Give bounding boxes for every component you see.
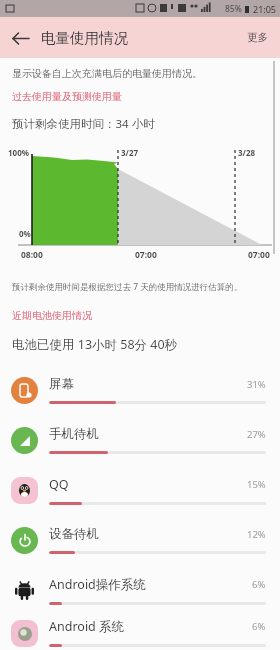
staticText: 预计剩余使用时间是根据您过去 7 天的使用情况进行估算的。 bbox=[12, 281, 243, 293]
button[interactable]: 屏幕 bbox=[0, 365, 280, 415]
button[interactable]: Android 系统 bbox=[0, 615, 280, 650]
staticText: 07:00 bbox=[248, 249, 270, 261]
staticText: 6% bbox=[252, 620, 266, 633]
staticText: 过去使用量及预测使用量 bbox=[12, 90, 122, 103]
staticText: 预计剩余使用时间：34 小时 bbox=[12, 116, 155, 132]
staticText: 08:00 bbox=[21, 249, 43, 261]
staticText: 100% bbox=[8, 147, 29, 158]
staticText: 设备待机 bbox=[49, 526, 247, 542]
button[interactable]: 手机待机 bbox=[0, 415, 280, 465]
staticText: 31% bbox=[247, 378, 266, 391]
staticText: 85% bbox=[225, 3, 242, 15]
button[interactable]: 更多 bbox=[235, 21, 280, 54]
staticText: 近期电池使用情况 bbox=[12, 309, 92, 322]
staticText: 电量使用情况 bbox=[41, 29, 128, 47]
staticText: 27% bbox=[247, 428, 266, 441]
button[interactable]: QQ bbox=[0, 465, 280, 515]
staticText: 3/27 bbox=[121, 147, 139, 158]
staticText: 屏幕 bbox=[49, 376, 247, 392]
staticText: 15% bbox=[247, 478, 266, 491]
staticText: 0% bbox=[19, 228, 31, 239]
staticText: 07:00 bbox=[135, 249, 157, 261]
staticText: 21:05 bbox=[253, 3, 277, 15]
button[interactable]: Android操作系统 bbox=[0, 565, 280, 615]
staticText: 3/28 bbox=[238, 147, 256, 158]
staticText: 6% bbox=[252, 578, 266, 591]
staticText: Android 系统 bbox=[49, 618, 252, 635]
staticText: 手机待机 bbox=[49, 426, 247, 442]
staticText: QQ bbox=[49, 476, 247, 493]
staticText: Android操作系统 bbox=[49, 576, 252, 593]
button[interactable]: 设备待机 bbox=[0, 515, 280, 565]
staticText: 12% bbox=[247, 528, 266, 541]
staticText: 显示设备自上次充满电后的电量使用情况。 bbox=[12, 67, 202, 80]
staticText: 更多 bbox=[247, 31, 268, 44]
button[interactable]: Back bbox=[0, 18, 40, 58]
staticText: 电池已使用 13小时 58分 40秒 bbox=[12, 336, 178, 353]
